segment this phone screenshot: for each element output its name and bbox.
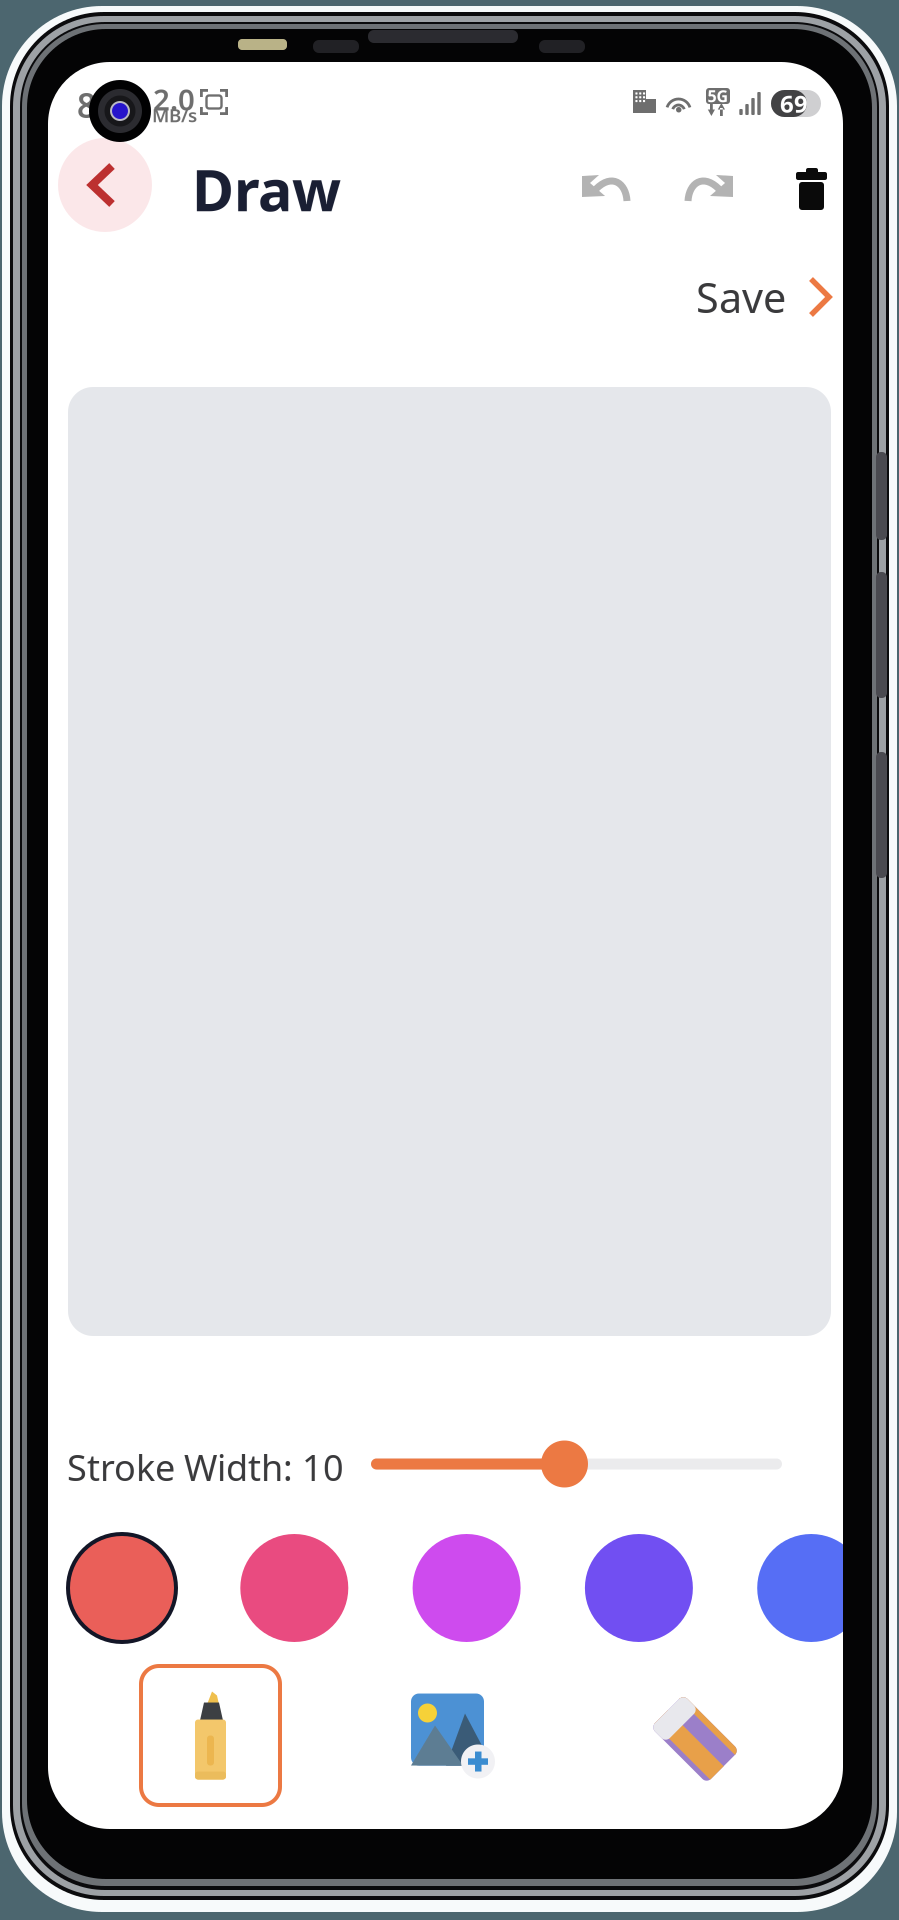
button[interactable]: Colour swatch <box>240 1534 348 1642</box>
staticText: 5G <box>707 85 728 107</box>
button[interactable]: Add image <box>411 1693 495 1778</box>
staticText: Draw <box>192 151 341 227</box>
button[interactable]: Redo <box>685 172 733 208</box>
button[interactable]: Delete <box>796 168 827 210</box>
button[interactable]: Undo <box>582 172 630 208</box>
staticText: 2.0 <box>153 79 195 118</box>
button[interactable]: Marker pen <box>141 1666 280 1805</box>
button[interactable]: Colour swatch <box>413 1534 521 1642</box>
staticText: MB/s <box>152 103 197 127</box>
button[interactable]: Colour swatch <box>757 1534 865 1642</box>
staticText: Stroke Width: 10 <box>67 1443 344 1491</box>
button[interactable]: Eraser <box>649 1693 741 1785</box>
button[interactable]: Colour swatch <box>585 1534 693 1642</box>
staticText: Save <box>696 270 786 324</box>
button[interactable]: Back <box>58 138 152 232</box>
button[interactable]: Colour swatch <box>68 1534 176 1642</box>
staticText: 69 <box>780 88 808 119</box>
staticText: 8:41 <box>77 83 143 127</box>
button[interactable]: Save <box>686 262 832 332</box>
